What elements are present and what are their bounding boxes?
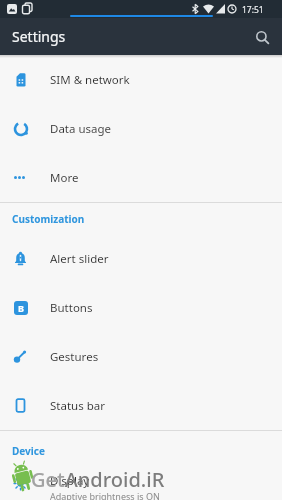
staticText: Alert slider: [50, 251, 109, 267]
button[interactable]: SIM & network: [0, 55, 282, 104]
staticText: 17:51: [242, 4, 264, 16]
staticText: Customization: [12, 212, 85, 226]
staticText: Data usage: [50, 121, 112, 137]
button[interactable]: Data usage: [0, 104, 282, 153]
button[interactable]: More: [0, 153, 282, 202]
staticText: Device: [12, 444, 45, 458]
staticText: GetAndroid.iR: [31, 466, 165, 493]
staticText: Gestures: [50, 349, 99, 365]
staticText: Status bar: [50, 398, 105, 414]
staticText: Adaptive brightness is ON: [50, 490, 160, 500]
staticText: More: [50, 170, 79, 186]
staticText: SIM & network: [50, 72, 130, 88]
button[interactable]: Alert slider: [0, 234, 282, 283]
button[interactable]: Status bar: [0, 381, 282, 430]
button[interactable]: Display: [0, 464, 282, 500]
staticText: B: [18, 302, 24, 314]
staticText: Buttons: [50, 300, 93, 316]
staticText: Display: [50, 473, 90, 489]
staticText: Settings: [12, 27, 66, 46]
button[interactable]: Gestures: [0, 332, 282, 381]
button[interactable]: [250, 25, 274, 49]
button[interactable]: B: [0, 283, 282, 332]
